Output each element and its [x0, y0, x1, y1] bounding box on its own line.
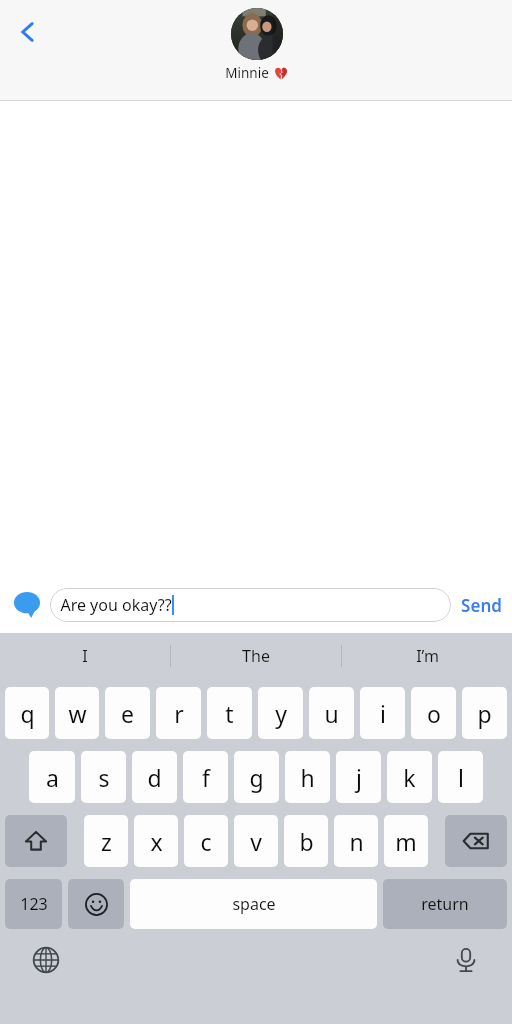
button[interactable]: return: [383, 879, 507, 929]
staticText: o: [427, 698, 441, 729]
staticText: u: [324, 698, 339, 729]
staticText: x: [150, 826, 163, 857]
staticText: space: [232, 893, 276, 915]
button[interactable]: Apps: [8, 586, 46, 624]
staticText: The: [242, 645, 270, 667]
button[interactable]: space: [130, 879, 377, 929]
button[interactable]: y: [258, 687, 303, 739]
staticText: w: [68, 698, 87, 729]
staticText: Are you okay??: [60, 594, 172, 616]
button[interactable]: Back: [6, 10, 50, 54]
button[interactable]: c: [184, 815, 228, 867]
button[interactable]: Emoji: [68, 879, 124, 929]
staticText: Send: [461, 594, 502, 617]
button[interactable]: Send: [461, 594, 502, 617]
button[interactable]: t: [207, 687, 252, 739]
button[interactable]: o: [411, 687, 456, 739]
button[interactable]: 123: [5, 879, 62, 929]
staticText: p: [477, 698, 492, 729]
button[interactable]: Minnie: [225, 8, 288, 82]
staticText: v: [250, 826, 262, 857]
staticText: 123: [20, 893, 48, 915]
staticText: i: [380, 698, 386, 729]
staticText: c: [200, 826, 212, 857]
button[interactable]: p: [462, 687, 507, 739]
staticText: q: [20, 698, 35, 729]
staticText: n: [349, 826, 364, 857]
button[interactable]: I: [0, 633, 170, 679]
staticText: h: [300, 762, 315, 793]
button[interactable]: r: [156, 687, 201, 739]
button[interactable]: Change keyboard: [26, 940, 66, 980]
staticText: m: [395, 826, 417, 857]
button[interactable]: h: [285, 751, 330, 803]
staticText: t: [225, 698, 234, 729]
button[interactable]: l: [438, 751, 483, 803]
button[interactable]: Delete: [445, 815, 507, 867]
staticText: r: [174, 698, 184, 729]
staticText: j: [356, 762, 362, 793]
button[interactable]: u: [309, 687, 354, 739]
button[interactable]: a: [29, 751, 75, 803]
button[interactable]: b: [284, 815, 328, 867]
button[interactable]: m: [384, 815, 428, 867]
button[interactable]: z: [84, 815, 128, 867]
button[interactable]: Are you okay??: [50, 588, 451, 622]
button[interactable]: The: [171, 633, 341, 679]
staticText: g: [249, 762, 264, 793]
button[interactable]: I’m: [342, 633, 512, 679]
staticText: y: [275, 698, 287, 729]
button[interactable]: s: [81, 751, 126, 803]
staticText: l: [458, 762, 464, 793]
staticText: Minnie: [225, 64, 269, 82]
staticText: return: [421, 893, 469, 915]
button[interactable]: v: [234, 815, 278, 867]
button[interactable]: q: [5, 687, 49, 739]
staticText: I’m: [416, 645, 439, 667]
staticText: s: [98, 762, 110, 793]
staticText: f: [202, 762, 210, 793]
staticText: z: [101, 826, 112, 857]
button[interactable]: e: [105, 687, 150, 739]
staticText: I: [82, 645, 88, 667]
button[interactable]: w: [55, 687, 99, 739]
button[interactable]: Dictate: [446, 940, 486, 980]
button[interactable]: k: [387, 751, 432, 803]
staticText: e: [121, 698, 134, 729]
staticText: b: [299, 826, 314, 857]
button[interactable]: j: [336, 751, 381, 803]
button[interactable]: x: [134, 815, 178, 867]
staticText: a: [46, 762, 59, 793]
staticText: k: [403, 762, 416, 793]
button[interactable]: i: [360, 687, 405, 739]
button[interactable]: d: [132, 751, 177, 803]
button[interactable]: n: [334, 815, 378, 867]
staticText: d: [147, 762, 162, 793]
button[interactable]: f: [183, 751, 228, 803]
button[interactable]: g: [234, 751, 279, 803]
button[interactable]: Shift: [5, 815, 67, 867]
